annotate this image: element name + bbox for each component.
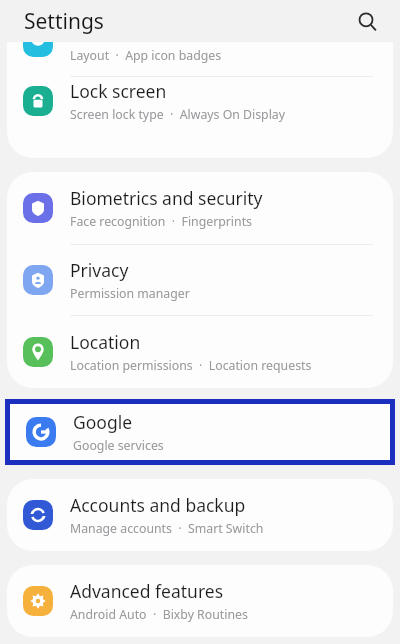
staticText: Settings — [24, 7, 104, 36]
staticText: Lock screen — [70, 79, 167, 103]
button[interactable]: Search — [350, 4, 384, 38]
staticText: Location — [70, 330, 141, 354]
button[interactable]: Location — [7, 316, 393, 388]
button[interactable]: Home screen — [7, 42, 393, 76]
staticText: Screen lock type · Always On Display — [70, 106, 286, 123]
button[interactable]: Accounts and backup — [7, 479, 393, 551]
staticText: Layout · App icon badges — [70, 47, 222, 64]
staticText: Permission manager — [70, 285, 190, 302]
staticText: Location permissions · Location requests — [70, 357, 312, 374]
staticText: Google services — [73, 437, 164, 454]
staticText: Face recognition · Fingerprints — [70, 213, 252, 230]
staticText: Biometrics and security — [70, 186, 263, 210]
staticText: Google — [73, 410, 133, 434]
button[interactable]: Advanced features — [7, 565, 393, 637]
staticText: Advanced features — [70, 579, 224, 603]
staticText: Android Auto · Bixby Routines — [70, 606, 248, 623]
button[interactable]: Lock screen — [7, 77, 393, 124]
staticText: Manage accounts · Smart Switch — [70, 520, 264, 537]
button[interactable]: Biometrics and security — [7, 172, 393, 244]
staticText: Privacy — [70, 258, 129, 282]
button[interactable]: Google — [10, 404, 390, 460]
button[interactable]: Privacy — [7, 245, 393, 315]
staticText: Accounts and backup — [70, 493, 246, 517]
